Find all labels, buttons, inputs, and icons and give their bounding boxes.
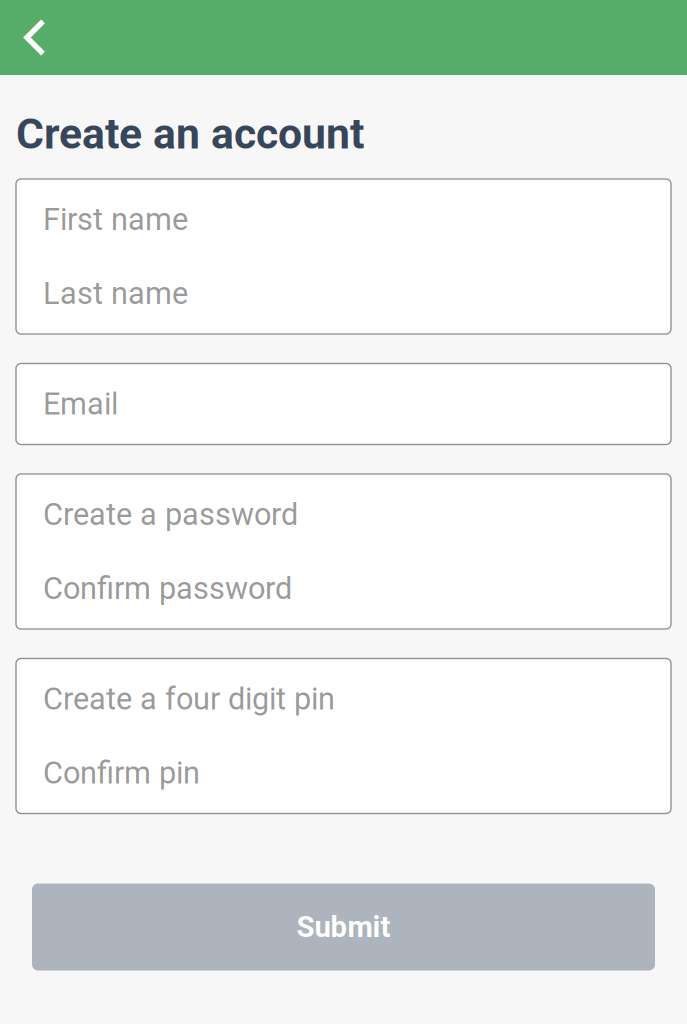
- staticText: First name: [43, 201, 188, 237]
- button[interactable]: Back: [0, 0, 70, 75]
- button[interactable]: Submit: [32, 883, 655, 970]
- button[interactable]: Confirm pin: [16, 736, 671, 810]
- staticText: Create a password: [43, 496, 298, 532]
- button[interactable]: First name: [16, 182, 671, 256]
- button[interactable]: Last name: [16, 256, 671, 330]
- button[interactable]: Create a four digit pin: [16, 662, 671, 736]
- staticText: Email: [43, 386, 118, 422]
- staticText: Last name: [43, 275, 188, 311]
- staticText: Create an account: [16, 109, 364, 159]
- staticText: Submit: [296, 910, 390, 944]
- button[interactable]: Confirm password: [16, 551, 671, 625]
- button[interactable]: Email: [16, 367, 671, 441]
- staticText: Confirm password: [43, 570, 292, 606]
- staticText: Create a four digit pin: [43, 681, 335, 717]
- staticText: Confirm pin: [43, 755, 200, 791]
- button[interactable]: Create a password: [16, 477, 671, 551]
